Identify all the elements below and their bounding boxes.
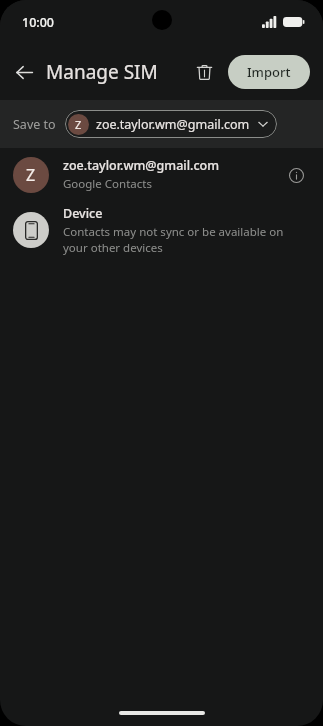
staticText: Save to — [13, 116, 56, 133]
staticText: 10:00 — [22, 14, 55, 31]
button[interactable]: Account info — [282, 161, 310, 189]
staticText: Z — [26, 164, 36, 186]
staticText: zoe.taylor.wm@gmail.com — [96, 116, 250, 133]
staticText: Manage SIM — [46, 59, 158, 85]
staticText: Contacts may not sync or be available on… — [63, 224, 310, 255]
staticText: Import — [247, 63, 291, 81]
button[interactable]: Delete — [186, 54, 222, 90]
button[interactable]: Z — [0, 148, 323, 201]
staticText: Google Contacts — [63, 176, 152, 192]
staticText: Device — [63, 205, 103, 222]
staticText: Z — [75, 117, 82, 132]
button[interactable]: Import — [228, 55, 310, 89]
button[interactable]: Device — [0, 201, 323, 258]
button[interactable]: Z — [65, 110, 277, 138]
button[interactable]: Back — [6, 54, 42, 90]
staticText: zoe.taylor.wm@gmail.com — [63, 157, 220, 174]
